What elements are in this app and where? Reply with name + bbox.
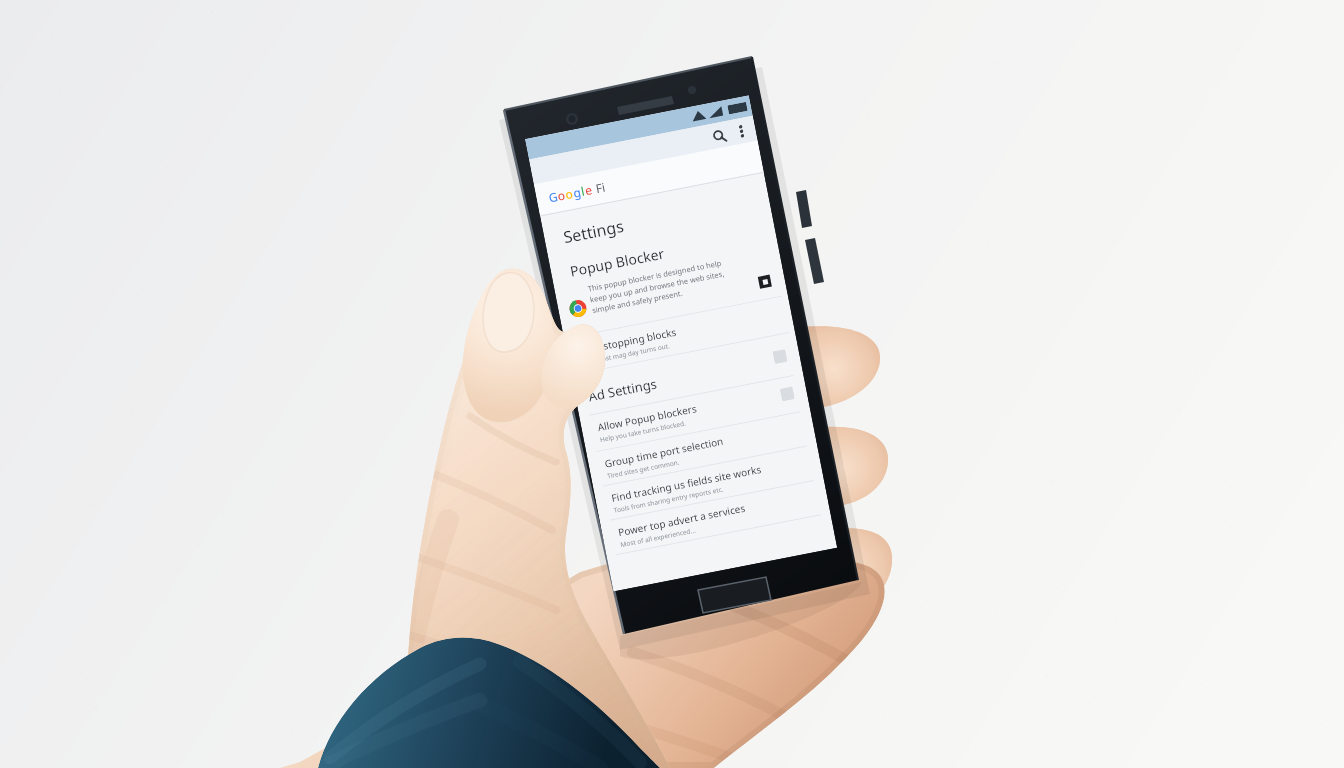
button[interactable]: Allow Popup blockers [596,382,797,444]
staticText: g [572,183,583,201]
staticText: Dirt most mag day turns out. [582,341,671,367]
button[interactable]: Power top advert a services [617,487,818,549]
staticText: l [579,183,586,199]
button[interactable]: Allow popup toggle [780,386,795,402]
staticText: Tired sites get common. [606,457,681,480]
staticText: o [564,185,575,202]
staticText: Group time port selection [603,434,725,471]
staticText: Allow Popup blockers [596,401,698,434]
button[interactable]: Search [0,0,1344,768]
button[interactable]: Best stopping blocks [579,305,780,367]
staticText: Fi [594,179,607,196]
staticText: Help you take turns blocked. [599,418,687,444]
button[interactable]: Search [708,125,729,146]
staticText: G [547,188,559,205]
staticText: Best stopping blocks [579,325,678,357]
staticText: Find tracking us fields site works [610,462,763,505]
button[interactable]: Blocker toggle [758,275,772,289]
staticText: Power top advert a services [617,501,747,539]
staticText: Most of all experienced... [620,525,697,549]
staticText: e [583,181,593,198]
staticText: Tools from sharing entry reports etc. [613,484,725,515]
button[interactable]: More options [732,122,751,141]
staticText: This popup blocker is designed to help k… [587,257,727,315]
staticText: Settings [561,215,626,248]
staticText: Ad Settings [587,374,659,405]
staticText: Popup Blocker [568,243,666,281]
staticText: o [556,186,567,204]
button[interactable]: Ad settings toggle [772,349,788,364]
button[interactable]: Group time port selection [603,418,804,480]
button[interactable]: Find tracking us fields site works [610,453,811,515]
